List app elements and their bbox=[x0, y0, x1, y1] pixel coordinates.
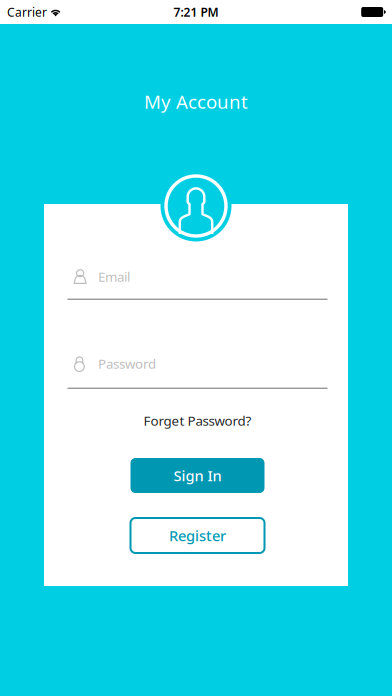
staticText: 7:21 PM bbox=[173, 4, 218, 20]
staticText: Forget Password? bbox=[143, 412, 251, 429]
staticText: Password bbox=[98, 355, 156, 372]
button[interactable]: Forget Password? bbox=[67, 412, 327, 429]
staticText: Sign In bbox=[173, 466, 221, 485]
staticText: My Account bbox=[144, 89, 248, 114]
staticText: Carrier bbox=[7, 4, 47, 20]
button[interactable]: Register bbox=[67, 518, 327, 553]
button[interactable]: Sign In bbox=[67, 458, 327, 493]
staticText: Register bbox=[169, 526, 226, 545]
staticText: Email bbox=[98, 268, 130, 285]
